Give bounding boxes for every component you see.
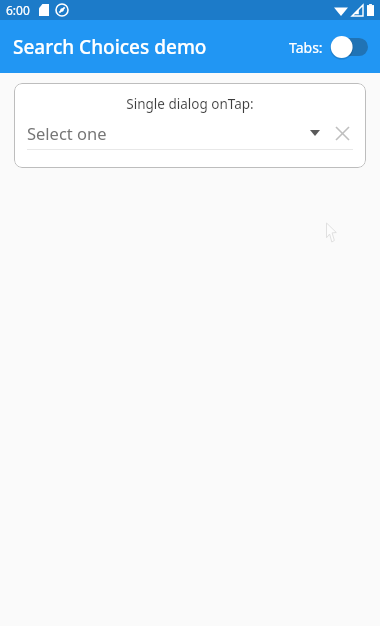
staticText: Search Choices demo [13, 34, 207, 60]
staticText: Select one [27, 122, 107, 144]
staticText: 6:00 [6, 2, 30, 18]
button[interactable]: Select one [27, 121, 305, 145]
button[interactable]: Open dropdown [305, 123, 325, 143]
staticText: Tabs: [289, 38, 323, 57]
staticText: Single dialog onTap: [27, 95, 353, 113]
button[interactable]: Clear selection [331, 122, 353, 144]
button[interactable]: Toggle tabs [330, 34, 368, 60]
